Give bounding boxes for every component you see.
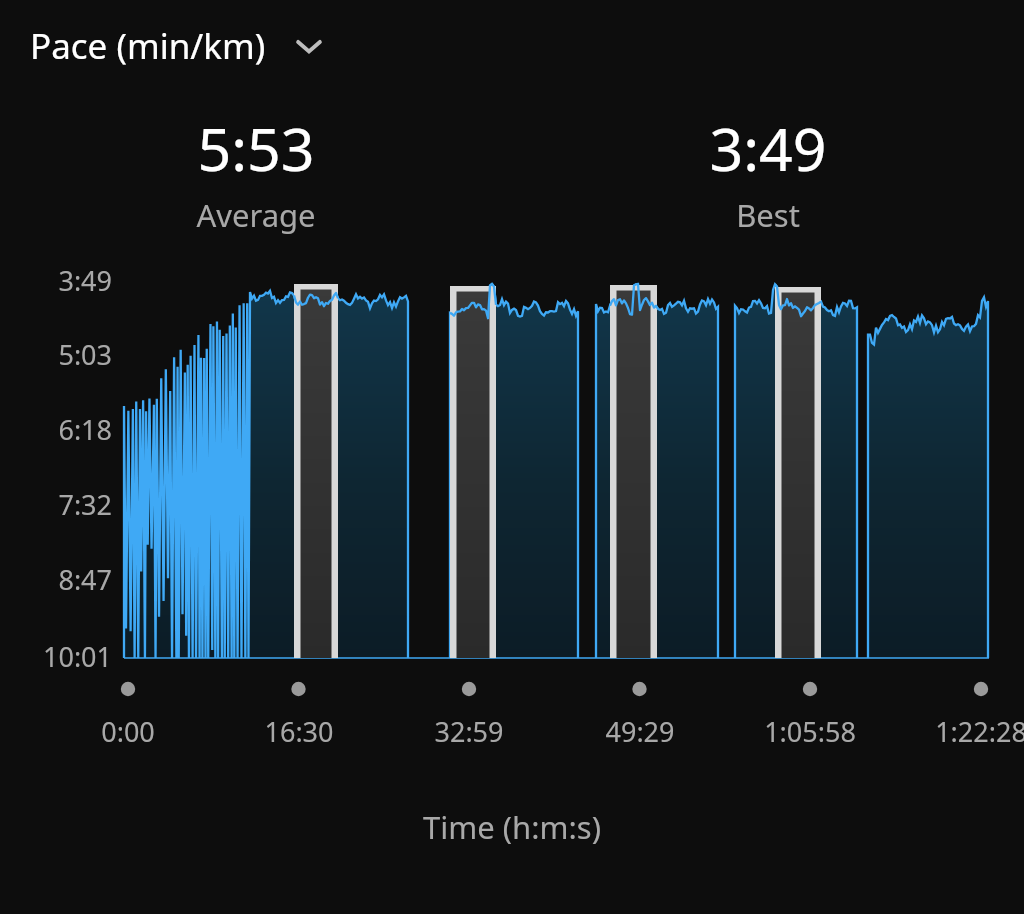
staticText: 3:49 xyxy=(568,108,968,188)
staticText: Average xyxy=(56,194,456,236)
staticText: 8:47 xyxy=(0,561,112,598)
button[interactable]: 3:49 xyxy=(568,108,968,236)
staticText: 32:59 xyxy=(379,713,559,750)
button[interactable]: Pace (min/km) xyxy=(28,18,328,74)
staticText: 1:05:58 xyxy=(720,713,900,750)
staticText: 6:18 xyxy=(0,411,112,448)
staticText: 1:22:28 xyxy=(891,713,1024,750)
staticText: 10:01 xyxy=(0,638,112,675)
other: Change metric xyxy=(292,29,326,63)
staticText: 3:49 xyxy=(0,262,112,299)
staticText: 7:32 xyxy=(0,486,112,523)
staticText: 16:30 xyxy=(209,713,389,750)
staticText: 49:29 xyxy=(550,713,730,750)
staticText: 0:00 xyxy=(38,713,218,750)
staticText: Time (h:m:s) xyxy=(0,806,1024,848)
staticText: 5:03 xyxy=(0,336,112,373)
staticText: Pace (min/km) xyxy=(30,22,266,70)
staticText: Best xyxy=(568,194,968,236)
staticText: 5:53 xyxy=(56,108,456,188)
button[interactable]: 5:53 xyxy=(56,108,456,236)
